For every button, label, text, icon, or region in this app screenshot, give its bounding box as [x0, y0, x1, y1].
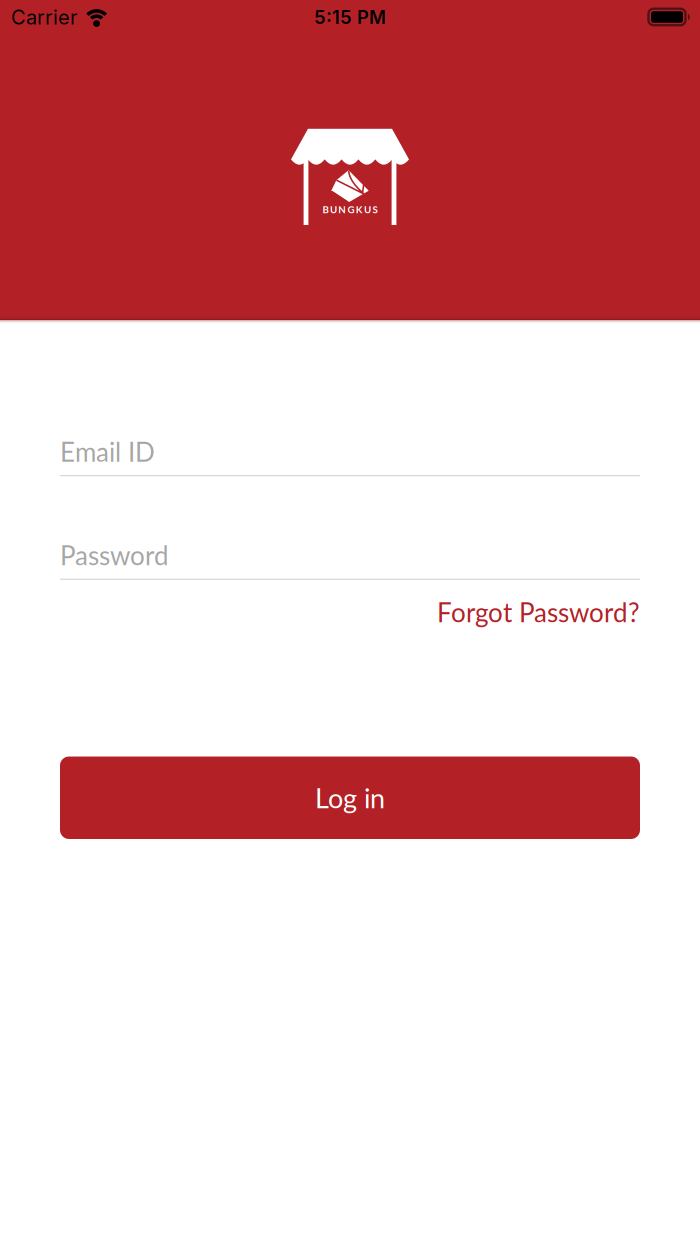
- staticText: U: [364, 204, 371, 215]
- staticText: Forgot Password?: [437, 596, 640, 628]
- staticText: B: [323, 204, 329, 215]
- staticText: U: [330, 204, 337, 215]
- button[interactable]: Password: [60, 539, 640, 580]
- staticText: Carrier: [11, 5, 77, 29]
- staticText: N: [338, 204, 346, 215]
- staticText: Password: [60, 539, 169, 571]
- button[interactable]: Forgot Password?: [437, 596, 640, 628]
- staticText: 5:15 PM: [314, 6, 386, 28]
- button[interactable]: Email ID: [60, 436, 640, 476]
- staticText: S: [372, 204, 377, 215]
- staticText: K: [356, 204, 363, 215]
- staticText: Email ID: [60, 436, 155, 467]
- button[interactable]: Log in: [60, 756, 640, 839]
- staticText: Log in: [315, 781, 385, 814]
- staticText: G: [347, 204, 354, 215]
